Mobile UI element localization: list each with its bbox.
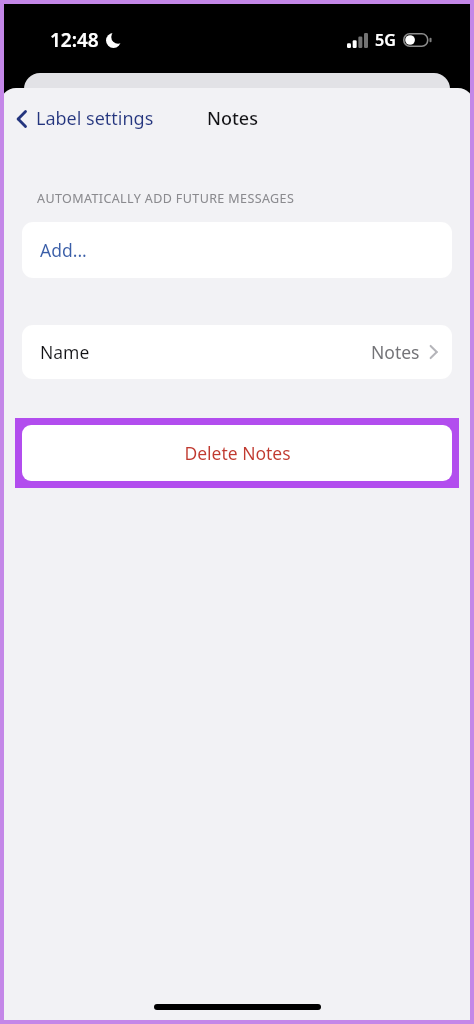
staticText: Add...	[40, 238, 87, 262]
button[interactable]: Delete Notes	[22, 425, 452, 481]
staticText: Notes	[371, 340, 420, 364]
staticText: AUTOMATICALLY ADD FUTURE MESSAGES	[37, 190, 295, 207]
button[interactable]: Name	[22, 325, 452, 379]
staticText: 5G	[375, 29, 396, 51]
button[interactable]: Add...	[22, 222, 452, 278]
staticText: Name	[40, 340, 90, 364]
staticText: Label settings	[36, 106, 154, 131]
staticText: Delete Notes	[184, 441, 291, 465]
button[interactable]: Label settings	[10, 102, 158, 135]
staticText: 12:48	[50, 27, 99, 53]
staticText: Notes	[207, 106, 258, 131]
